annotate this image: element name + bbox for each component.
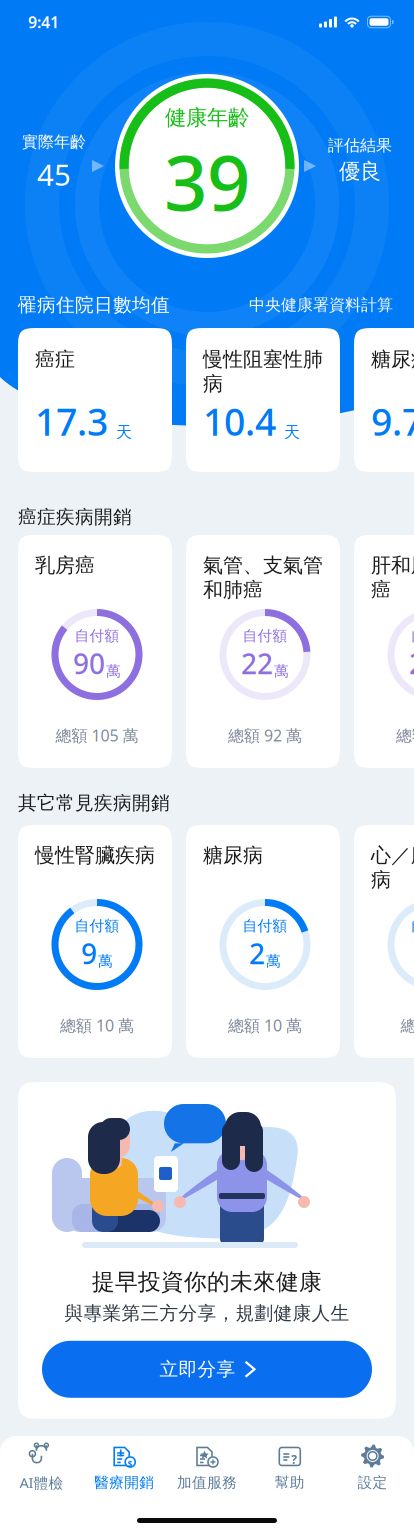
staticText: 9:41 [28,11,59,33]
button[interactable]: 癌症 [18,328,172,472]
staticText: 自付額 [242,917,287,935]
button[interactable]: 設定 [331,1432,414,1501]
staticText: 癌症疾病開銷 [18,505,132,528]
staticText: 評估結果 [328,136,392,155]
staticText: 天 [284,422,300,442]
staticText: 氣管、支氣管和肺癌 [203,553,323,602]
staticText: 2 [249,935,265,972]
staticText: 肝和肝內膽管癌 [371,553,414,602]
staticText: 罹病住院日數均值 [18,293,170,316]
staticText: 9.7 [371,396,414,446]
button[interactable]: 加值服務 [166,1432,248,1501]
staticText: 20 [409,645,414,682]
button[interactable]: ? [248,1432,331,1501]
staticText: ? [291,1451,297,1467]
staticText: 與專業第三方分享，規劃健康人生 [64,1302,349,1325]
staticText: 中央健康署資料計算 [249,295,393,315]
staticText: 健康年齡 [165,104,249,131]
staticText: 9 [81,935,97,972]
staticText: 萬 [106,662,121,680]
staticText: 糖尿病 [203,843,263,868]
staticText: 癌症 [35,347,75,372]
staticText: 自付額 [410,917,414,935]
button[interactable]: 肝和肝內膽管癌 [354,535,414,768]
button[interactable]: 立即分享 [42,1341,372,1398]
staticText: 17.3 [35,396,108,446]
staticText: 乳房癌 [35,553,95,578]
staticText: 幫助 [275,1473,305,1491]
staticText: 提早投資你的未來健康 [92,1268,322,1296]
staticText: 醫療開銷 [94,1473,154,1491]
staticText: 45 [37,155,71,194]
staticText: 加值服務 [177,1473,237,1491]
button[interactable]: 糖尿病 [186,825,340,1058]
staticText: 糖尿病 [371,347,414,372]
staticText: 90 [73,645,105,682]
staticText: 10.4 [203,396,276,446]
staticText: 總額 10 萬 [228,1015,302,1036]
staticText: 其它常見疾病開銷 [18,791,170,814]
staticText: 優良 [339,158,381,184]
staticText: 實際年齡 [22,132,86,152]
staticText: 天 [116,422,132,442]
staticText: 立即分享 [159,1358,235,1381]
staticText: 心／腦血管疾病 [371,843,414,892]
button[interactable]: 慢性阻塞性肺病 [186,328,340,472]
staticText: 萬 [266,952,281,970]
button[interactable]: 糖尿病 [354,328,414,472]
staticText: 自付額 [74,917,119,935]
staticText: 總額 105 萬 [55,725,138,746]
staticText: 慢性腎臟疾病 [35,843,155,868]
staticText: 22 [241,645,273,682]
staticText: 總額 80 萬 [396,725,414,746]
staticText: 自付額 [74,627,119,645]
staticText: 自付額 [242,627,287,645]
staticText: 慢性阻塞性肺病 [203,347,323,396]
staticText: 39 [164,131,250,231]
button[interactable]: 慢性腎臟疾病 [18,825,172,1058]
button[interactable]: AI體檢 [0,1432,83,1502]
staticText: 自付額 [410,627,414,645]
staticText: $ [128,1459,133,1470]
staticText: 總額 9 萬 [400,1015,414,1036]
staticText: 總額 10 萬 [60,1015,134,1036]
button[interactable]: 乳房癌 [18,535,172,768]
button[interactable]: 氣管、支氣管和肺癌 [186,535,340,768]
button[interactable]: $ [83,1432,166,1501]
staticText: 萬 [98,952,113,970]
staticText: 設定 [358,1473,388,1491]
button[interactable]: 心／腦血管疾病 [354,825,414,1058]
staticText: AI體檢 [19,1473,63,1492]
staticText: 總額 92 萬 [228,725,302,746]
staticText: 萬 [274,662,289,680]
